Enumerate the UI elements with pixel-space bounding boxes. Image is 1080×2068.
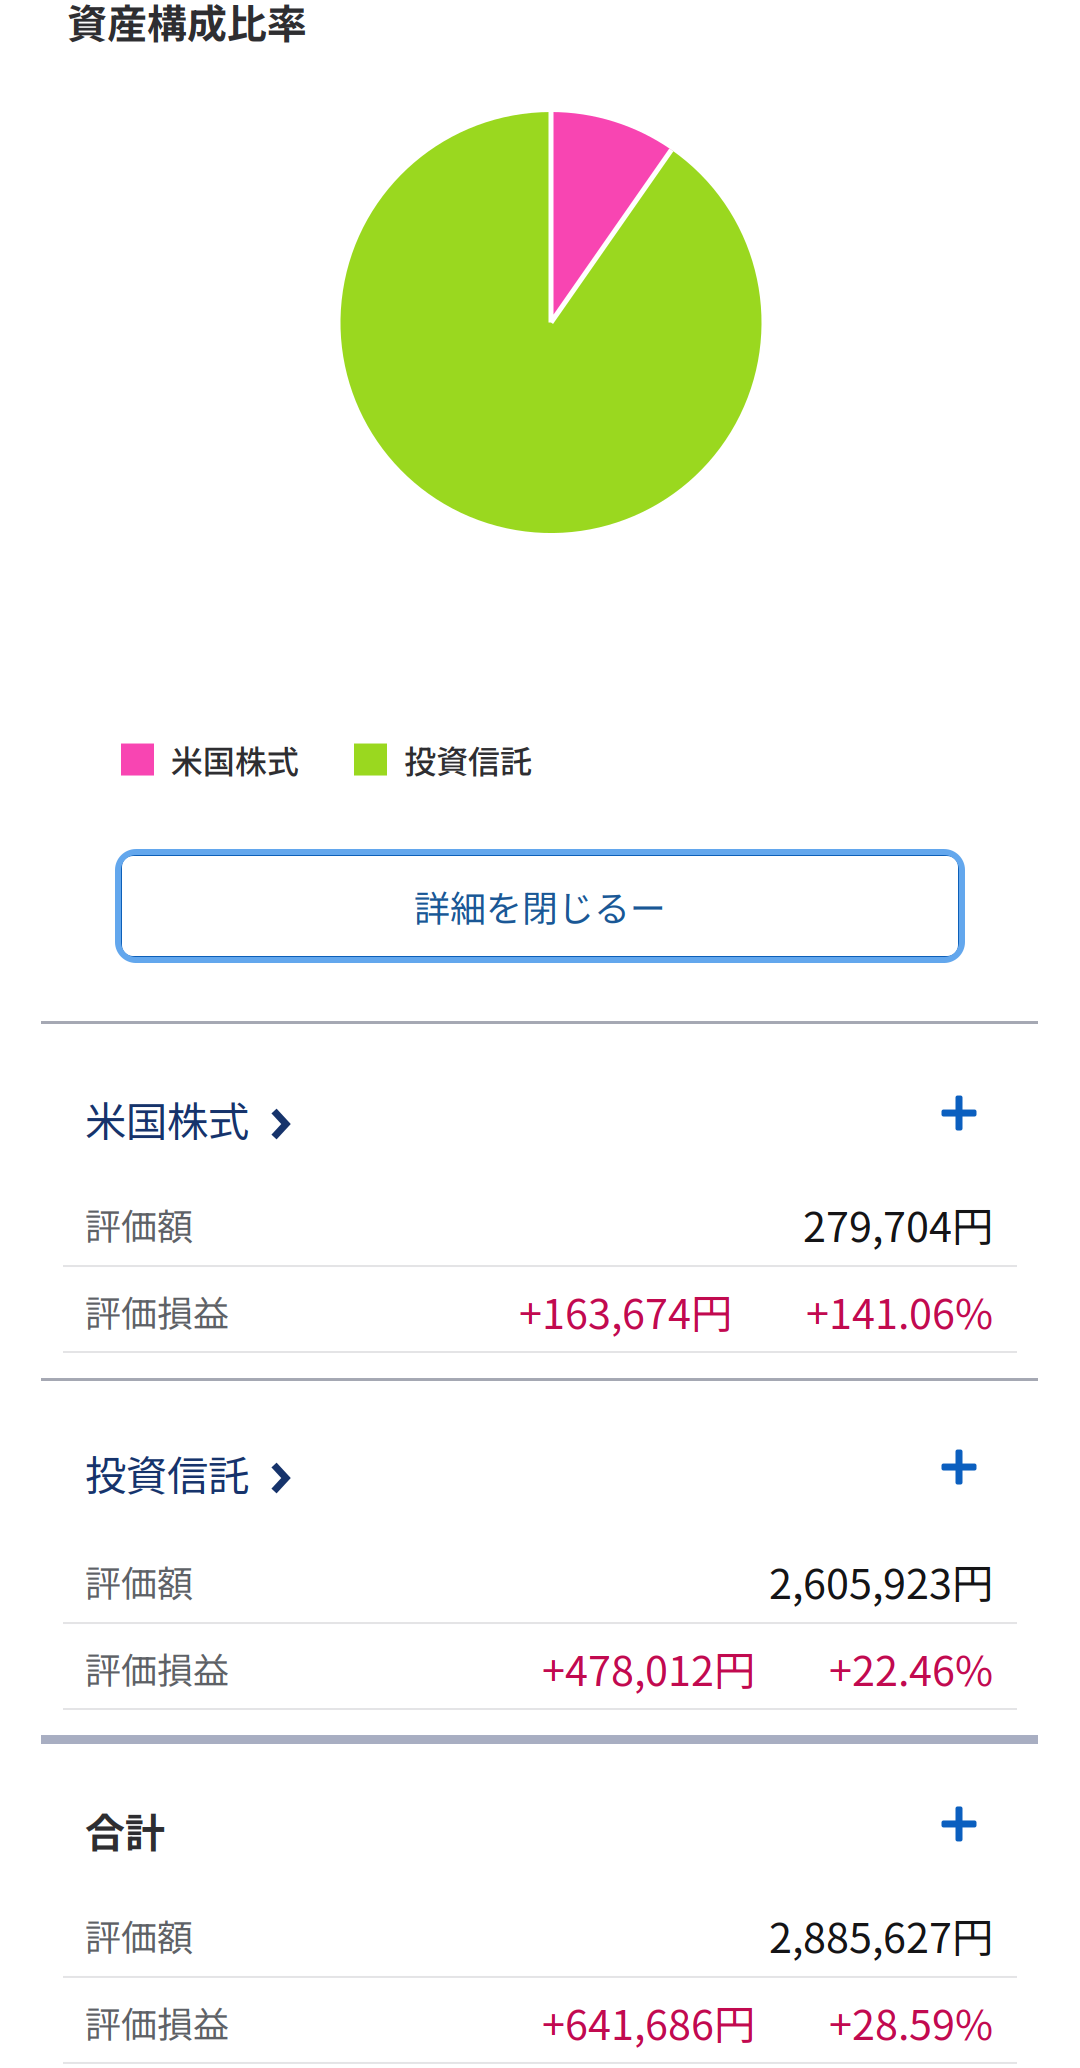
staticText: 投資信託: [85, 1443, 249, 1503]
button[interactable]: Add to 投資信託: [929, 1443, 989, 1503]
staticText: +163,674円: [519, 1281, 732, 1341]
button[interactable]: 米国株式: [85, 1089, 289, 1149]
staticText: +141.06%: [806, 1281, 993, 1341]
staticText: 評価損益: [85, 1285, 229, 1337]
staticText: +22.46%: [829, 1638, 993, 1698]
staticText: 2,885,627円: [769, 1905, 993, 1965]
staticText: 2,605,923円: [769, 1551, 993, 1611]
staticText: +641,686円: [542, 1992, 755, 2052]
staticText: 詳細を閉じるー: [414, 880, 666, 932]
staticText: 評価損益: [85, 1642, 229, 1694]
button[interactable]: 詳細を閉じるー: [115, 849, 965, 963]
staticText: 投資信託: [404, 736, 532, 783]
button[interactable]: Add to 合計: [929, 1800, 989, 1860]
staticText: +478,012円: [542, 1638, 755, 1698]
staticText: 評価損益: [85, 1996, 229, 2048]
staticText: 評価額: [85, 1909, 193, 1961]
button[interactable]: Add to 米国株式: [929, 1089, 989, 1149]
staticText: 評価額: [85, 1555, 193, 1607]
staticText: 合計: [85, 1801, 165, 1859]
staticText: 米国株式: [85, 1089, 249, 1149]
staticText: 279,704円: [803, 1194, 993, 1254]
staticText: 米国株式: [171, 736, 299, 783]
staticText: +28.59%: [829, 1992, 993, 2052]
staticText: 資産構成比率: [67, 0, 307, 50]
staticText: 評価額: [85, 1198, 193, 1250]
button[interactable]: 投資信託: [85, 1443, 289, 1503]
